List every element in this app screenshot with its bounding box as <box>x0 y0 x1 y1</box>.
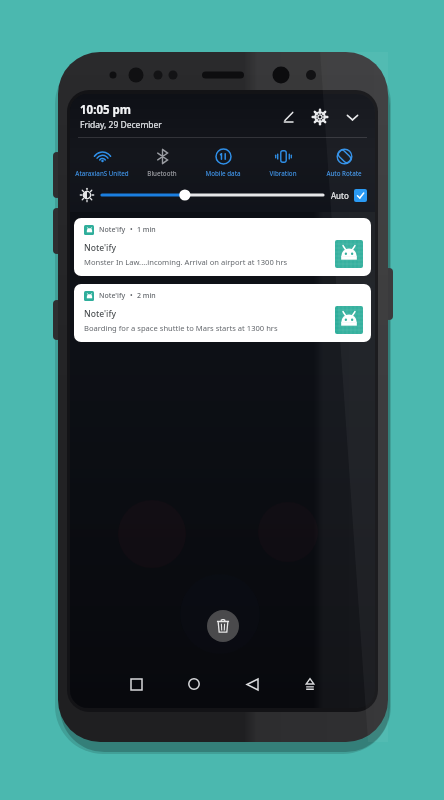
staticText: Note'ify <box>99 225 126 235</box>
staticText: Auto Rotate <box>326 169 362 177</box>
button[interactable] <box>102 187 323 203</box>
button[interactable]: Vibration <box>254 147 312 178</box>
button[interactable]: Edit quick settings <box>275 104 301 130</box>
staticText: 10:05 pm <box>80 102 132 118</box>
staticText: Note'ify <box>84 242 117 254</box>
button[interactable]: Clear all notifications <box>207 610 239 642</box>
staticText: Auto <box>331 190 349 201</box>
staticText: 2 min <box>137 291 156 301</box>
staticText: AtaraxianS United <box>75 169 129 177</box>
button[interactable]: Settings <box>307 104 333 130</box>
staticText: 1 min <box>137 225 156 235</box>
button[interactable]: Expand <box>339 104 365 130</box>
button[interactable]: Hide keyboard <box>293 670 327 698</box>
button[interactable]: Bluetooth <box>133 147 191 178</box>
button[interactable]: Back <box>235 670 269 698</box>
button[interactable]: Note'ify <box>74 284 371 342</box>
staticText: Mobile data <box>205 169 241 177</box>
staticText: Note'ify <box>84 308 117 320</box>
staticText: • <box>130 225 133 235</box>
button[interactable]: Note'ify <box>74 218 371 276</box>
staticText: • <box>130 291 133 301</box>
staticText: Friday, 29 December <box>80 119 162 131</box>
staticText: Bluetooth <box>147 169 177 177</box>
staticText: Boarding for a space shuttle to Mars sta… <box>84 323 278 333</box>
button[interactable]: AtaraxianS United <box>73 147 131 178</box>
staticText: Note'ify <box>99 291 126 301</box>
staticText: Monster In Law....incoming. Arrival on a… <box>84 257 288 267</box>
button[interactable]: Recents <box>119 670 153 698</box>
button[interactable]: Auto Rotate <box>315 147 373 178</box>
button[interactable]: Auto brightness checkbox <box>354 189 367 202</box>
staticText: Vibration <box>269 169 297 177</box>
button[interactable]: Home <box>177 670 211 698</box>
button[interactable]: Mobile data <box>194 147 252 178</box>
